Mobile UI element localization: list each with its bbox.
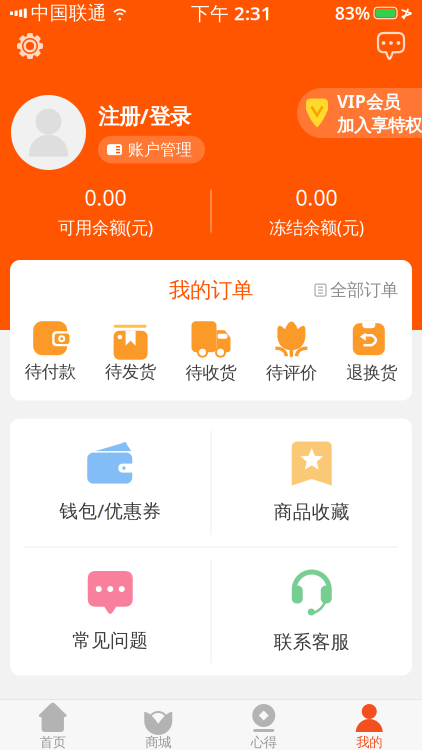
staticText: 我的: [356, 734, 382, 750]
button[interactable]: 待评价: [251, 319, 332, 383]
staticText: 注册/登录: [98, 101, 191, 130]
button[interactable]: 心得: [211, 700, 316, 750]
button[interactable]: 账户管理: [98, 136, 205, 163]
button[interactable]: 退换货: [332, 319, 412, 383]
button[interactable]: 全部订单: [315, 279, 398, 301]
button[interactable]: 待发货: [90, 320, 171, 382]
staticText: ≯: [400, 4, 413, 22]
button[interactable]: VIP会员: [297, 88, 422, 138]
staticText: 83%: [335, 1, 370, 24]
button[interactable]: 待付款: [10, 320, 90, 382]
staticText: 全部订单: [330, 279, 398, 301]
staticText: 首页: [40, 734, 66, 750]
staticText: 我的订单: [169, 277, 253, 303]
staticText: 商品收藏: [274, 500, 350, 523]
staticText: 商城: [145, 734, 171, 750]
staticText: 心得: [251, 734, 277, 750]
staticText: 联系客服: [274, 630, 350, 653]
staticText: 中国联通: [31, 1, 107, 24]
button[interactable]: 联系客服: [211, 547, 412, 675]
staticText: 待发货: [105, 361, 156, 382]
staticText: 待评价: [266, 362, 317, 383]
staticText: 账户管理: [128, 140, 192, 159]
button[interactable]: 首页: [0, 700, 105, 750]
button[interactable]: 设置: [10, 26, 50, 66]
staticText: 钱包/优惠券: [59, 498, 161, 523]
button[interactable]: 钱包/优惠券: [10, 418, 210, 546]
staticText: 待付款: [25, 361, 76, 382]
staticText: 可用余额(元): [58, 216, 153, 239]
button[interactable]: 我的: [316, 700, 422, 750]
button[interactable]: 商品收藏: [211, 418, 412, 546]
staticText: 0.00: [84, 183, 126, 212]
staticText: 常见问题: [72, 629, 148, 652]
staticText: VIP会员: [337, 90, 400, 113]
button[interactable]: 商城: [105, 700, 211, 750]
staticText: 下午 2:31: [191, 1, 272, 25]
button[interactable]: 待收货: [171, 319, 251, 383]
staticText: 冻结余额(元): [269, 216, 364, 239]
staticText: 0.00: [295, 183, 337, 212]
staticText: 退换货: [346, 362, 397, 383]
button[interactable]: 常见问题: [10, 547, 210, 675]
staticText: 待收货: [185, 362, 236, 383]
staticText: 加入享特权: [337, 115, 422, 136]
button[interactable]: 消息: [371, 26, 411, 66]
